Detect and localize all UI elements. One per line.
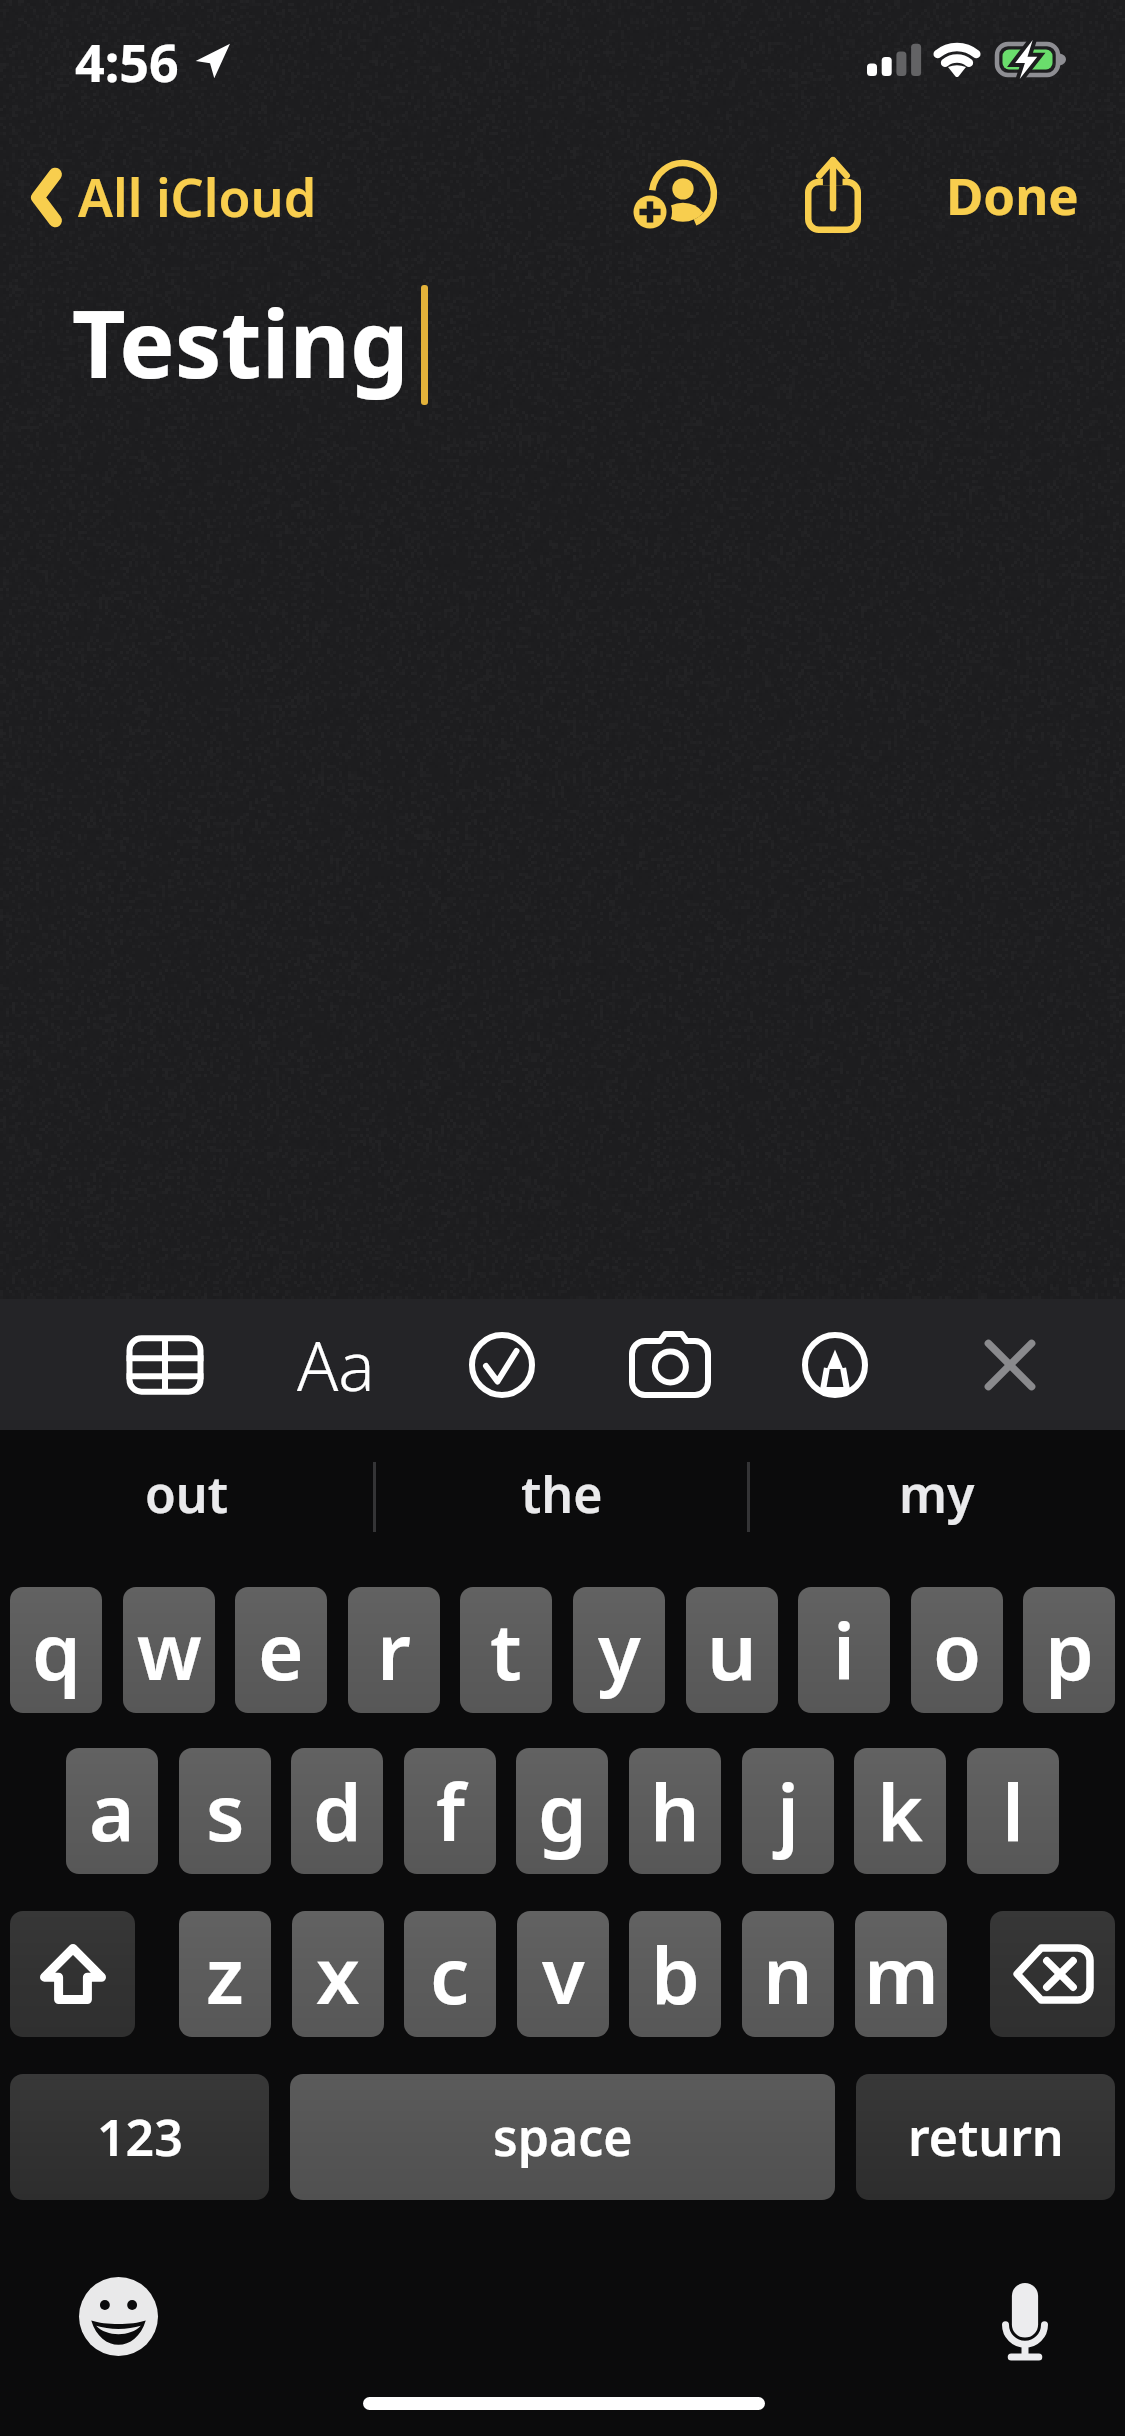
button[interactable]: w [123,1587,215,1713]
button[interactable]: i [798,1587,890,1713]
staticText: e [258,1597,304,1703]
staticText: p [1045,1597,1094,1703]
staticText: s [206,1758,245,1864]
staticText: j [777,1758,800,1864]
staticText: h [650,1758,700,1864]
button[interactable]: d [291,1748,383,1874]
staticText: u [707,1597,757,1703]
button[interactable]: e [235,1587,327,1713]
button[interactable]: Done [934,146,1094,256]
staticText: q [32,1597,81,1703]
button[interactable]: m [855,1911,947,2037]
button[interactable]: o [911,1587,1003,1713]
button[interactable]: j [742,1748,834,1874]
staticText: Aa [297,1318,375,1411]
button[interactable]: n [742,1911,834,2037]
staticText: my [899,1460,975,1528]
button[interactable]: Close keyboard [948,1299,1072,1430]
button[interactable]: u [686,1587,778,1713]
button[interactable]: h [629,1748,721,1874]
button[interactable]: Emoji [60,2258,177,2375]
button[interactable]: y [573,1587,665,1713]
staticText: w [137,1597,202,1703]
button[interactable]: Table [103,1299,227,1430]
button[interactable]: Markup [773,1299,897,1430]
staticText: i [833,1597,856,1703]
button[interactable]: Testing [0,270,1125,1299]
staticText: space [493,2103,633,2171]
staticText: z [206,1921,244,2027]
button[interactable]: t [460,1587,552,1713]
button[interactable]: Add people [612,142,734,256]
button[interactable]: z [179,1911,271,2037]
staticText: f [436,1758,465,1864]
button[interactable]: return [856,2074,1115,2200]
staticText: x [316,1921,360,2027]
button[interactable]: Backspace [990,1911,1115,2037]
button[interactable]: Back to All iCloud [14,146,334,256]
staticText: m [864,1921,939,2027]
button[interactable]: Aa [274,1299,398,1430]
button[interactable]: space [290,2074,835,2200]
button[interactable]: g [516,1748,608,1874]
button[interactable]: x [292,1911,384,2037]
staticText: the [521,1460,603,1528]
staticText: 123 [97,2103,183,2171]
staticText: return [908,2103,1064,2171]
staticText: All iCloud [78,161,317,232]
button[interactable]: a [66,1748,158,1874]
button[interactable]: Share [782,142,884,256]
staticText: d [313,1758,362,1864]
staticText: Done [946,160,1079,229]
staticText: k [877,1758,923,1864]
button[interactable]: my [751,1430,1123,1557]
button[interactable]: q [10,1587,102,1713]
staticText: y [598,1597,641,1703]
staticText: l [1002,1758,1025,1864]
staticText: out [145,1460,229,1528]
button[interactable]: p [1023,1587,1115,1713]
staticText: v [542,1921,585,2027]
button[interactable]: Checklist [440,1299,564,1430]
button[interactable]: b [629,1911,721,2037]
button[interactable]: f [404,1748,496,1874]
button[interactable]: 123 [10,2074,269,2200]
button[interactable]: c [404,1911,496,2037]
button[interactable]: l [967,1748,1059,1874]
staticText: a [89,1758,135,1864]
staticText: n [763,1921,813,2027]
staticText: r [377,1597,411,1703]
button[interactable]: s [179,1748,271,1874]
staticText: g [538,1758,587,1864]
button[interactable]: out [1,1430,373,1557]
staticText: Testing [72,279,409,406]
staticText: c [430,1921,470,2027]
button[interactable]: Dictation [986,2268,1063,2375]
staticText: t [490,1597,522,1703]
staticText: o [933,1597,982,1703]
button[interactable]: the [376,1430,748,1557]
button[interactable]: Camera [608,1299,732,1430]
staticText: b [651,1921,700,2027]
button[interactable]: Shift [10,1911,135,2037]
button[interactable]: r [348,1587,440,1713]
staticText: 4:56 [75,26,179,97]
button[interactable]: v [517,1911,609,2037]
button[interactable]: k [854,1748,946,1874]
